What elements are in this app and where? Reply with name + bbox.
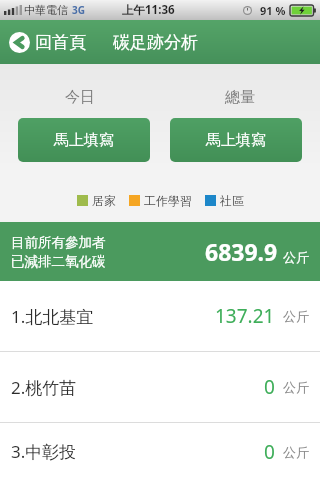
staticText: 6839.9: [205, 236, 278, 267]
staticText: 馬上填寫: [54, 131, 114, 150]
staticText: 居家: [92, 193, 116, 208]
staticText: 1.北北基宜: [11, 305, 94, 328]
staticText: 0: [264, 439, 275, 465]
staticText: 公斤: [283, 308, 309, 324]
staticText: 2.桃竹苗: [11, 376, 77, 399]
button[interactable]: 馬上填寫: [18, 118, 150, 162]
staticText: 3.中彰投: [11, 440, 77, 463]
staticText: 上午11:36: [122, 2, 175, 18]
staticText: 3G: [72, 3, 85, 17]
staticText: 91 %: [260, 3, 286, 18]
staticText: 總量: [225, 88, 255, 107]
staticText: 公斤: [283, 444, 309, 460]
staticText: 0: [264, 374, 275, 400]
staticText: 公斤: [283, 379, 309, 395]
staticText: 工作學習: [144, 193, 192, 208]
staticText: 社區: [220, 193, 244, 208]
button[interactable]: 回首頁: [7, 28, 88, 57]
button[interactable]: 2.桃竹苗: [0, 352, 320, 422]
button[interactable]: 1.北北基宜: [0, 281, 320, 351]
staticText: 碳足跡分析: [113, 32, 198, 53]
button[interactable]: 3.中彰投: [0, 423, 320, 480]
staticText: 公斤: [283, 249, 309, 265]
staticText: 中華電信: [24, 3, 68, 17]
staticText: 已減排二氧化碳: [11, 253, 106, 270]
staticText: 馬上填寫: [206, 131, 266, 150]
staticText: 目前所有參加者: [11, 234, 106, 251]
staticText: 137.21: [215, 303, 275, 329]
button[interactable]: 馬上填寫: [170, 118, 302, 162]
staticText: 今日: [65, 88, 95, 107]
staticText: 回首頁: [35, 32, 86, 53]
